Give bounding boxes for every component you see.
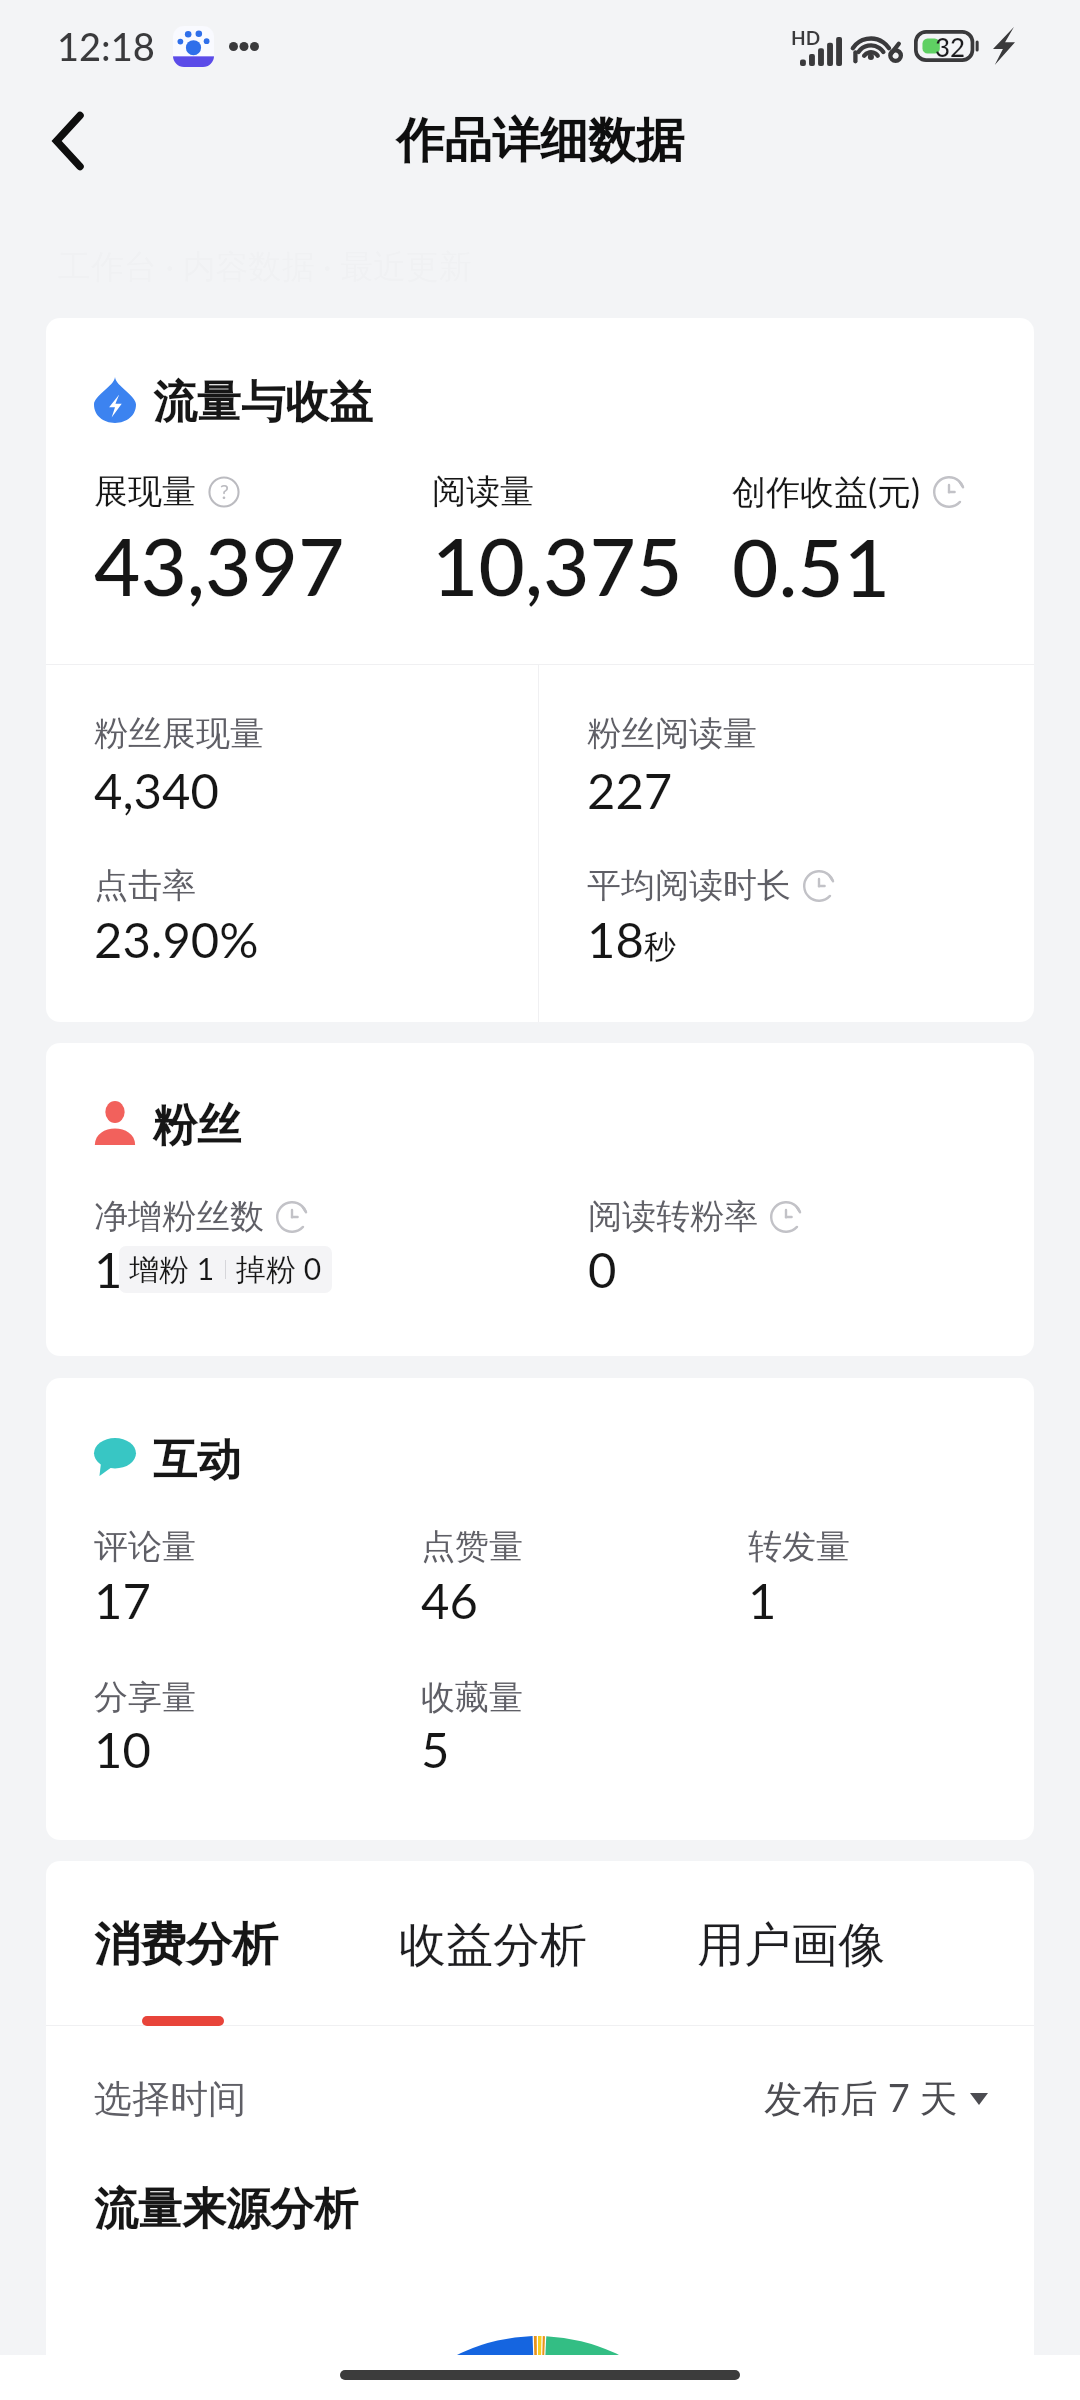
staticText: 46: [421, 1571, 478, 1630]
staticText: 17: [94, 1571, 151, 1630]
staticText: 消费分析: [94, 1916, 278, 1974]
staticText: 5: [421, 1720, 450, 1779]
staticText: 分享量: [94, 1676, 196, 1719]
button[interactable]: 消费分析: [94, 1916, 278, 1974]
staticText: HD: [791, 26, 821, 49]
staticText: 创作收益(元): [732, 470, 921, 514]
staticText: 0: [588, 1240, 617, 1299]
staticText: 用户画像: [697, 1916, 885, 1975]
staticText: 净增粉丝数: [94, 1195, 264, 1238]
staticText: 展现量: [94, 470, 196, 513]
staticText: 32: [935, 31, 966, 62]
staticText: 10,375: [432, 517, 683, 613]
staticText: 收藏量: [421, 1676, 523, 1719]
staticText: 互动: [153, 1433, 241, 1488]
staticText: 收益分析: [399, 1916, 587, 1975]
staticText: 流量来源分析: [94, 2182, 358, 2237]
button[interactable]: Back: [24, 97, 112, 185]
staticText: 0.51: [732, 518, 891, 614]
staticText: 掉粉 0: [236, 1250, 322, 1289]
staticText: 作品详细数据: [396, 111, 684, 171]
staticText: 227: [587, 761, 673, 820]
staticText: 评论量: [94, 1525, 196, 1568]
staticText: 秒: [644, 927, 676, 967]
staticText: 流量与收益: [153, 375, 373, 430]
staticText: 1: [748, 1571, 777, 1630]
staticText: 4,340: [94, 761, 219, 820]
staticText: 23.90%: [94, 910, 259, 969]
staticText: 1: [94, 1240, 123, 1299]
button[interactable]: 发布后 7 天: [764, 2074, 988, 2123]
staticText: 阅读转粉率: [588, 1195, 758, 1238]
staticText: 12:18: [57, 23, 155, 69]
button[interactable]: 收益分析: [399, 1916, 587, 1975]
staticText: 平均阅读时长: [587, 864, 791, 907]
staticText: 18: [587, 910, 644, 969]
staticText: 10: [94, 1720, 151, 1779]
staticText: 43,397: [94, 517, 345, 613]
staticText: 选择时间: [94, 2075, 246, 2123]
staticText: 阅读量: [432, 470, 534, 513]
staticText: 发布后 7 天: [764, 2074, 958, 2123]
staticText: 转发量: [748, 1525, 850, 1568]
staticText: 粉丝阅读量: [587, 712, 757, 755]
staticText: ?: [220, 479, 229, 503]
staticText: 点击率: [94, 864, 196, 907]
staticText: 粉丝: [153, 1098, 241, 1153]
staticText: 增粉 1: [129, 1250, 215, 1289]
staticText: 点赞量: [421, 1525, 523, 1568]
button[interactable]: 用户画像: [697, 1916, 885, 1975]
staticText: 粉丝展现量: [94, 712, 264, 755]
